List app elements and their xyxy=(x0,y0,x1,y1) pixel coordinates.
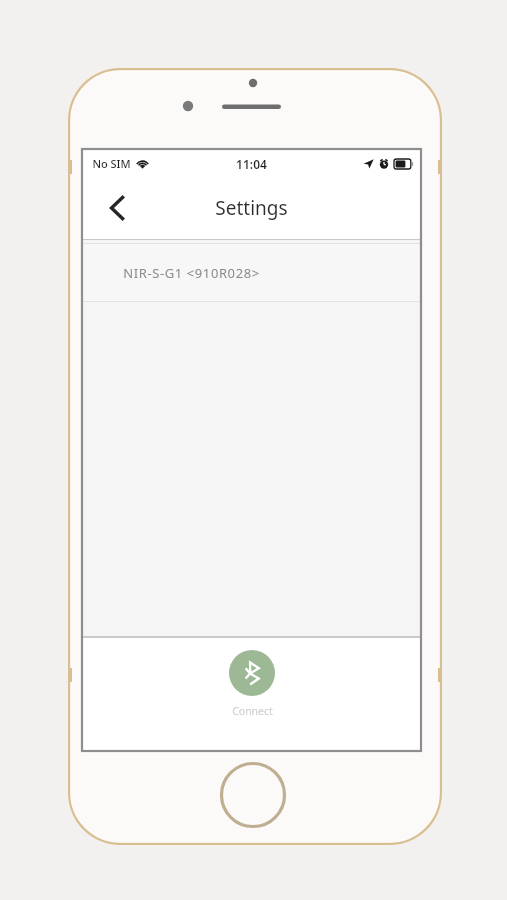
button[interactable]: Connect xyxy=(229,650,275,718)
staticText: No SIM xyxy=(92,156,131,171)
staticText: NIR-S-G1 <910R028> xyxy=(123,264,260,282)
other: Home xyxy=(220,762,286,828)
staticText: Settings xyxy=(215,195,288,221)
staticText: Connect xyxy=(232,704,273,718)
staticText: 11:04 xyxy=(236,156,267,172)
button[interactable]: NIR-S-G1 <910R028> xyxy=(83,244,420,301)
button[interactable]: Back xyxy=(97,188,137,228)
